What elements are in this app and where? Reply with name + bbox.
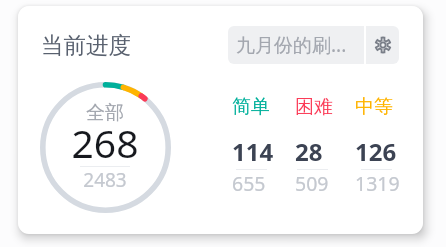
staticText: 509: [295, 170, 329, 197]
staticText: 268: [45, 116, 165, 169]
button[interactable]: 困难: [289, 92, 341, 192]
button[interactable]: 简单: [226, 92, 278, 192]
staticText: 28: [295, 135, 323, 168]
button[interactable]: 中等: [349, 92, 401, 192]
staticText: 114: [232, 135, 274, 168]
staticText: 困难: [295, 95, 333, 119]
staticText: 全部: [45, 101, 165, 125]
button[interactable]: 九月份的刷...: [228, 26, 364, 64]
staticText: 655: [232, 170, 266, 197]
button[interactable]: Settings: [366, 26, 399, 64]
staticText: 2483: [45, 167, 165, 193]
staticText: 中等: [355, 95, 393, 119]
staticText: 1319: [355, 170, 400, 197]
staticText: 简单: [232, 95, 270, 119]
staticText: 当前进度: [41, 31, 131, 59]
staticText: 九月份的刷...: [236, 32, 347, 58]
staticText: 126: [355, 135, 397, 168]
